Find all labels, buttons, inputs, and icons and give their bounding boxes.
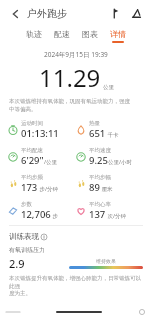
staticText: 次/分钟 bbox=[106, 212, 126, 220]
staticText: 651 bbox=[89, 127, 106, 140]
staticText: 热量 bbox=[89, 120, 100, 127]
staticText: 11.29 bbox=[39, 61, 101, 94]
button[interactable]: 返回上一页 bbox=[6, 308, 20, 316]
staticText: 公里 bbox=[103, 84, 114, 91]
staticText: 2.9 bbox=[9, 256, 25, 271]
staticText: 步 bbox=[51, 212, 58, 220]
staticText: 173 bbox=[21, 181, 38, 194]
button[interactable]: 平均心率 bbox=[76, 201, 144, 221]
staticText: 平均步幅 bbox=[89, 174, 111, 181]
button[interactable]: 图表 bbox=[76, 27, 104, 45]
staticText: 89 bbox=[89, 181, 100, 194]
staticText: 度为主。 bbox=[9, 290, 31, 297]
staticText: 12,706 bbox=[21, 208, 51, 221]
button[interactable]: 轨迹 bbox=[20, 27, 48, 45]
button[interactable]: 热量 bbox=[76, 120, 144, 140]
staticText: 训练表现 bbox=[9, 232, 39, 241]
button[interactable]: 分享 bbox=[106, 5, 123, 22]
staticText: 平均步频 bbox=[21, 174, 43, 181]
button[interactable]: 详情 bbox=[104, 27, 132, 45]
button[interactable]: 更多 bbox=[128, 5, 145, 22]
button[interactable]: 返回 bbox=[7, 5, 24, 22]
button[interactable]: 步数 bbox=[8, 201, 76, 221]
staticText: 中等偏高。 bbox=[9, 106, 37, 113]
button[interactable]: 训练表现 bbox=[9, 232, 47, 241]
button[interactable]: 平均步频 bbox=[8, 174, 76, 194]
staticText: /公里 bbox=[44, 158, 58, 166]
staticText: 01:13:11 bbox=[21, 127, 59, 140]
staticText: 步数 bbox=[21, 201, 32, 208]
staticText: 公里/小时 bbox=[108, 158, 133, 166]
button[interactable]: 平均步幅 bbox=[76, 174, 144, 194]
staticText: 6'29" bbox=[21, 154, 44, 167]
button[interactable]: 平均配速 bbox=[8, 147, 76, 167]
staticText: 本次锻炼提升有氧体能，增强心肺能力，日常锻炼可以此强 bbox=[9, 275, 143, 289]
staticText: 轨迹 bbox=[26, 29, 42, 39]
button[interactable]: 主页 bbox=[56, 311, 102, 313]
staticText: 配速 bbox=[54, 29, 70, 39]
staticText: 有氧训练压力 bbox=[9, 246, 45, 254]
staticText: 维持效果 bbox=[96, 258, 116, 264]
button[interactable]: 配速 bbox=[48, 27, 76, 45]
staticText: 平均心率 bbox=[89, 201, 111, 208]
staticText: 平均配速 bbox=[21, 147, 43, 154]
staticText: 9.25 bbox=[89, 154, 108, 167]
staticText: 2024年9月15日 19:39 bbox=[44, 50, 108, 59]
staticText: 本次锻炼维持有氧体能，巩固有氧运动能力，强度 bbox=[9, 98, 130, 105]
staticText: 137 bbox=[89, 208, 106, 221]
staticText: 图表 bbox=[82, 29, 98, 39]
staticText: 步/分钟 bbox=[38, 185, 58, 193]
staticText: 运动时间 bbox=[21, 120, 43, 127]
staticText: 千卡 bbox=[106, 131, 119, 139]
staticText: 厘米 bbox=[100, 185, 113, 193]
button[interactable]: 运动时间 bbox=[8, 120, 76, 140]
staticText: 平均速度 bbox=[89, 147, 111, 154]
staticText: 详情 bbox=[110, 29, 126, 39]
button[interactable]: 最近任务 bbox=[138, 308, 146, 316]
button[interactable]: 平均速度 bbox=[76, 147, 144, 167]
staticText: 户外跑步 bbox=[27, 7, 67, 20]
